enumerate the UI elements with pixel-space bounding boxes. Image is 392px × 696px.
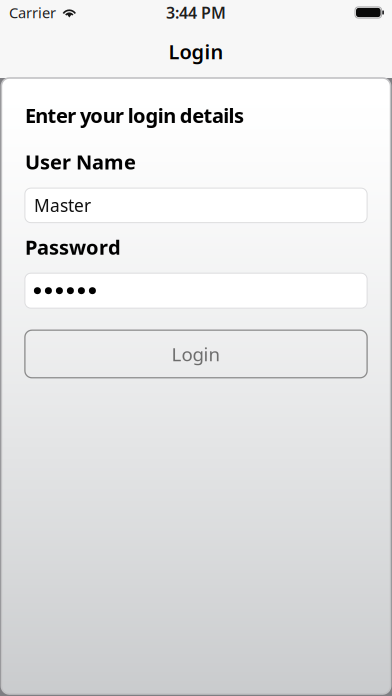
staticText: Master bbox=[34, 194, 91, 217]
staticText: Enter your login details bbox=[25, 102, 244, 129]
staticText: Login bbox=[168, 38, 223, 65]
staticText: Carrier bbox=[9, 3, 56, 22]
button[interactable]: Login bbox=[25, 330, 367, 378]
staticText: Password bbox=[25, 234, 121, 260]
staticText: 3:44 PM bbox=[166, 2, 226, 23]
staticText: User Name bbox=[25, 149, 136, 175]
staticText: Login bbox=[171, 342, 220, 366]
